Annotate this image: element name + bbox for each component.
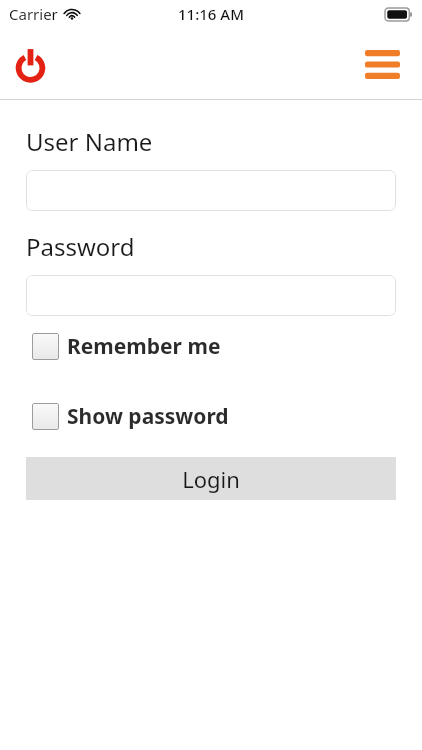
button[interactable] bbox=[26, 275, 396, 316]
staticText: 11:16 AM bbox=[178, 4, 244, 24]
button[interactable] bbox=[26, 170, 396, 211]
button[interactable]: Menu bbox=[360, 42, 404, 86]
staticText: Carrier bbox=[9, 4, 58, 24]
button[interactable]: Login bbox=[26, 457, 396, 500]
staticText: Show password bbox=[67, 402, 229, 431]
staticText: User Name bbox=[26, 125, 153, 158]
staticText: Remember me bbox=[67, 332, 221, 361]
button[interactable]: Power bbox=[8, 42, 52, 86]
staticText: Password bbox=[26, 230, 135, 263]
button[interactable]: Remember me bbox=[32, 332, 221, 361]
staticText: Login bbox=[182, 464, 240, 494]
button[interactable]: Show password bbox=[32, 402, 229, 431]
